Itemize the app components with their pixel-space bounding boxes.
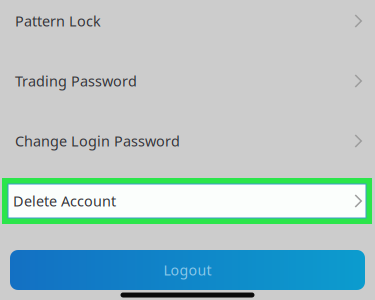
staticText: Trading Password (15, 71, 137, 91)
button[interactable]: Logout (10, 250, 365, 290)
staticText: Delete Account (13, 191, 116, 211)
button[interactable]: Trading Password (0, 51, 375, 111)
staticText: Logout (163, 260, 211, 280)
button[interactable]: Change Login Password (0, 111, 375, 171)
button[interactable]: Delete Account (0, 171, 375, 231)
staticText: Change Login Password (15, 131, 180, 151)
staticText: Pattern Lock (15, 11, 101, 31)
button[interactable]: Pattern Lock (0, 0, 375, 51)
